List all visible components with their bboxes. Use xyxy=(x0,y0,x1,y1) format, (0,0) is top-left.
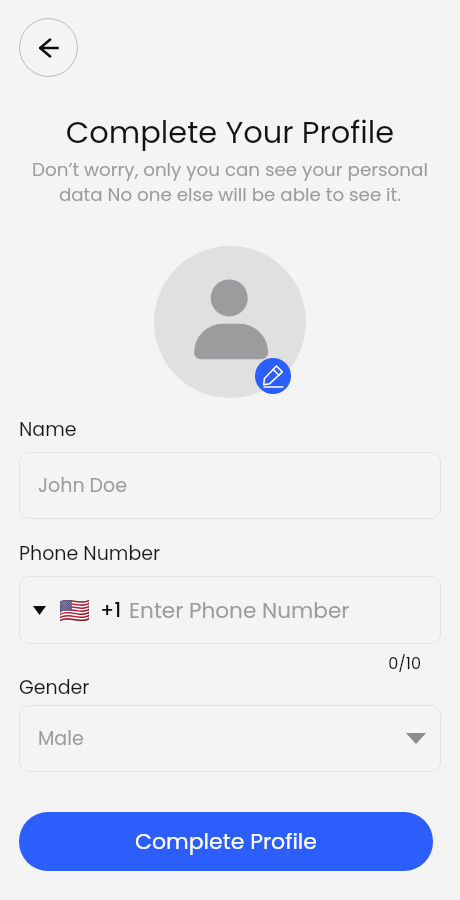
staticText: Gender xyxy=(19,674,90,701)
button[interactable]: John Doe xyxy=(19,452,441,519)
button[interactable]: Male xyxy=(19,705,441,772)
button[interactable]: Edit profile photo xyxy=(255,358,291,394)
staticText: 🇺🇸 xyxy=(59,596,91,625)
button[interactable]: 🇺🇸 xyxy=(19,576,441,644)
staticText: John Doe xyxy=(38,472,127,499)
staticText: +1 xyxy=(100,596,122,624)
staticText: Name xyxy=(19,416,77,443)
staticText: Complete Your Profile xyxy=(0,111,460,154)
staticText: Enter Phone Number xyxy=(129,595,350,625)
staticText: Complete Profile xyxy=(135,826,317,857)
button[interactable]: Complete Profile xyxy=(19,812,433,871)
staticText: 0/10 xyxy=(19,652,421,674)
button[interactable]: Back xyxy=(19,18,78,77)
staticText: Phone Number xyxy=(19,540,161,567)
staticText: Don’t worry, only you can see your perso… xyxy=(19,157,441,208)
staticText: Male xyxy=(38,725,84,752)
